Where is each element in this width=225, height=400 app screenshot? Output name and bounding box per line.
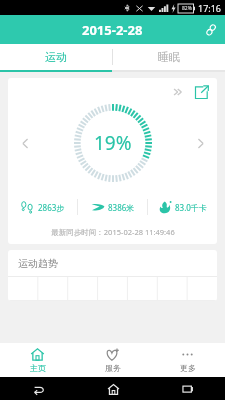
- button[interactable]: 服务: [75, 343, 150, 377]
- staticText: 运动: [45, 50, 67, 64]
- button[interactable]: Home: [104, 380, 122, 398]
- button[interactable]: 睡眠: [113, 44, 225, 70]
- button[interactable]: More: [168, 84, 188, 100]
- staticText: 19%: [94, 130, 132, 156]
- staticText: 运动趋势: [18, 257, 58, 270]
- staticText: 更多: [180, 363, 196, 373]
- button[interactable]: Link device: [196, 15, 225, 44]
- button[interactable]: 8386米: [78, 192, 147, 222]
- staticText: 睡眠: [158, 50, 180, 64]
- button[interactable]: 2863步: [8, 192, 77, 222]
- button[interactable]: Previous day: [8, 100, 42, 186]
- staticText: 服务: [105, 363, 121, 373]
- staticText: 17:16: [198, 2, 222, 14]
- button[interactable]: 更多: [150, 343, 225, 377]
- button[interactable]: 主页: [0, 343, 75, 377]
- button[interactable]: Recent apps: [179, 380, 197, 398]
- staticText: 82%: [182, 5, 192, 12]
- button[interactable]: 运动: [0, 44, 112, 70]
- button[interactable]: Next day: [183, 100, 217, 186]
- staticText: 2015-2-28: [82, 21, 143, 39]
- button[interactable]: Back: [29, 380, 47, 398]
- button[interactable]: Share: [194, 85, 209, 100]
- button[interactable]: 83.0千卡: [148, 192, 217, 222]
- staticText: 8386米: [108, 202, 135, 213]
- staticText: 83.0千卡: [175, 202, 207, 213]
- staticText: 最新同步时间：2015-02-28 11:49:46: [51, 227, 175, 237]
- staticText: 2863步: [38, 202, 65, 213]
- staticText: 主页: [30, 363, 46, 373]
